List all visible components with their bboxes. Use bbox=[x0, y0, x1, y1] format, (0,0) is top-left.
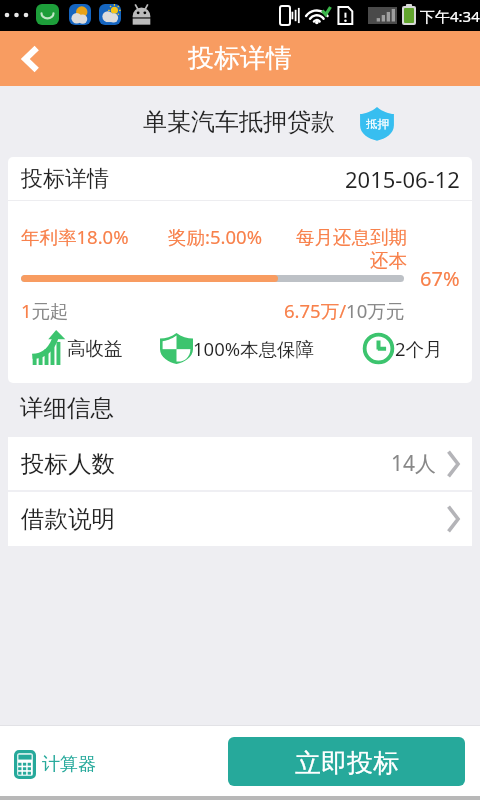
staticText: 详细信息 bbox=[20, 393, 114, 423]
button[interactable]: 立即投标 bbox=[228, 737, 465, 786]
staticText: 6.75万/10万元 bbox=[284, 298, 405, 323]
staticText: 2个月 bbox=[395, 336, 443, 361]
staticText: 投标详情 bbox=[188, 42, 292, 75]
staticText: 单某汽车抵押贷款 bbox=[143, 107, 335, 137]
staticText: 投标人数 bbox=[21, 449, 115, 479]
staticText: 14人 bbox=[391, 449, 437, 478]
staticText: 高收益 bbox=[67, 337, 123, 360]
button[interactable]: 计算器 bbox=[14, 736, 124, 792]
staticText: 奖励:5.00% bbox=[168, 224, 263, 249]
staticText: 每月还息到期 还本 bbox=[287, 226, 407, 273]
staticText: 立即投标 bbox=[295, 747, 399, 780]
staticText: 抵押 bbox=[366, 117, 389, 131]
staticText: 1元起 bbox=[21, 298, 69, 323]
staticText: 年利率18.0% bbox=[21, 224, 129, 249]
staticText: 投标详情 bbox=[21, 165, 109, 193]
staticText: 计算器 bbox=[42, 753, 96, 776]
staticText: 100%本息保障 bbox=[193, 336, 315, 361]
staticText: 下午4:34 bbox=[420, 6, 480, 26]
button[interactable]: Back bbox=[0, 31, 62, 86]
staticText: 67% bbox=[420, 265, 460, 292]
button[interactable]: 投标人数 bbox=[8, 437, 472, 490]
button[interactable]: 借款说明 bbox=[8, 492, 472, 546]
staticText: 2015-06-12 bbox=[345, 164, 460, 194]
staticText: 借款说明 bbox=[21, 504, 115, 534]
